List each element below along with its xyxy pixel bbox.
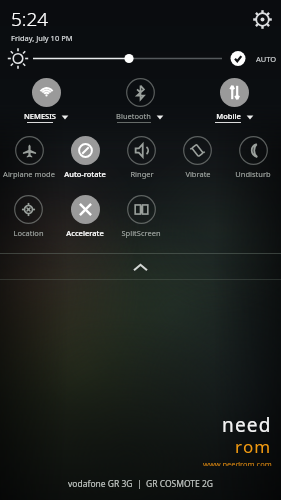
staticText: Ringer (130, 169, 154, 179)
button[interactable]: Accelerate (66, 195, 104, 238)
staticText: Friday, July 10 PM (11, 33, 73, 43)
staticText: vodafone GR 3G | GR COSMOTE 2G (68, 478, 214, 490)
staticText: Airplane mode (3, 169, 55, 179)
button[interactable]: Ringer (127, 136, 156, 179)
staticText: Accelerate (66, 228, 104, 238)
staticText: Auto-rotate (64, 169, 106, 179)
button[interactable]: Collapse (0, 253, 281, 280)
button[interactable]: Settings (251, 8, 273, 30)
staticText: Vibrate (185, 169, 211, 179)
button[interactable]: NEMESIS (24, 78, 69, 123)
staticText: need (222, 412, 272, 438)
staticText: Undisturb (235, 169, 271, 179)
staticText: rom (235, 435, 272, 458)
button[interactable]: Bluetooth (116, 78, 164, 123)
button[interactable]: Vibrate (183, 136, 212, 179)
button[interactable]: Airplane mode (3, 136, 55, 179)
staticText: NEMESIS (24, 111, 56, 121)
staticText: Bluetooth (116, 111, 151, 121)
button[interactable]: Location (13, 195, 44, 238)
staticText: Mobile (216, 111, 241, 121)
button[interactable]: Auto-rotate (64, 136, 106, 179)
button[interactable]: SplitScreen (121, 195, 161, 238)
button[interactable]: AUTO (256, 54, 277, 64)
staticText: AUTO (256, 54, 277, 64)
staticText: 5:24 (11, 6, 49, 32)
staticText: www.needrom.com (203, 459, 272, 466)
staticText: SplitScreen (121, 228, 161, 238)
button[interactable]: Mobile (215, 78, 254, 123)
staticText: Location (13, 228, 44, 238)
button[interactable]: Undisturb (235, 136, 271, 179)
